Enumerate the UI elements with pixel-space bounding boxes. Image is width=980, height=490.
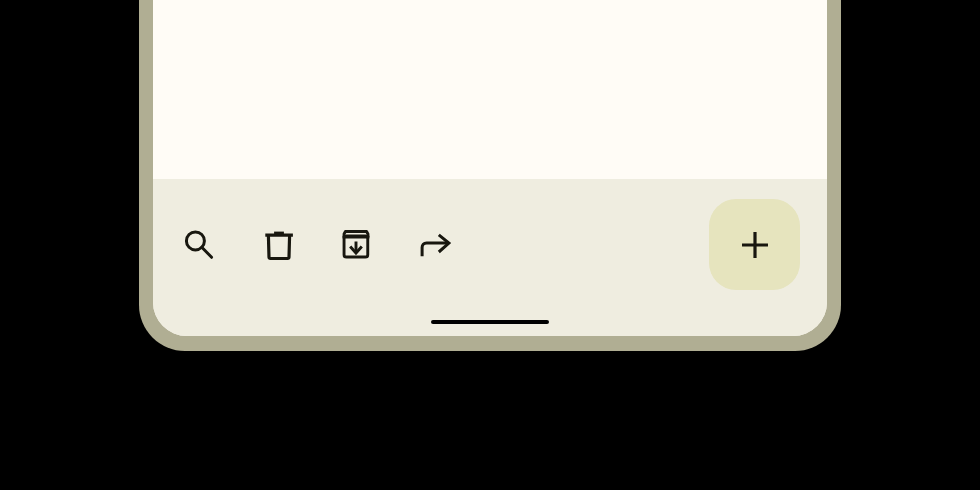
button[interactable]: Archive [320, 209, 392, 281]
button[interactable]: Add [709, 199, 800, 290]
button[interactable]: Delete [243, 209, 315, 281]
button[interactable]: Search [160, 209, 232, 281]
button[interactable]: Share [399, 209, 471, 281]
